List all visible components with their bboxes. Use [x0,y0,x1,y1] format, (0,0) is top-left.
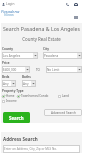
staticText: Land [62,94,69,98]
staticText: Enter an Address, City, Zip or MLS No. [4,147,57,151]
staticText: Pasadena [1,9,20,15]
button[interactable]: Pasadena [43,52,82,59]
button[interactable]: Income [2,99,17,103]
staticText: Beds [2,75,10,79]
staticText: Any [23,82,31,86]
button[interactable]: $400,000 [2,66,30,73]
staticText: City [43,47,50,51]
button[interactable]: Townhomes/Condo [17,94,58,98]
staticText: Income [6,99,17,103]
staticText: Price [2,61,10,65]
staticText: Los Angeles [3,54,33,58]
button[interactable]: Enter an Address, City, Zip or MLS No. [3,145,80,153]
button[interactable]: Login [2,2,15,6]
staticText: Townhomes/Condo [21,94,49,98]
button[interactable]: Email [73,2,78,7]
button[interactable]: Any [2,80,16,87]
button[interactable]: Land [58,94,69,98]
button[interactable]: Los Angeles [2,52,38,59]
staticText: Advanced Search [51,111,76,115]
staticText: Address Search [3,136,38,142]
staticText: Login [6,2,15,6]
staticText: County Real Estate [1,36,82,42]
staticText: No Limit [47,68,77,72]
button[interactable]: Search [3,112,30,123]
staticText: Pasadena [44,54,77,58]
staticText: Property Type [2,89,24,93]
staticText: $400,000 [3,68,25,72]
staticText: TO [30,68,46,72]
staticText: Any [3,82,11,86]
button[interactable]: Call [65,2,70,7]
staticText: Baths [22,75,31,79]
staticText: Home [6,94,15,98]
button[interactable]: Menu [72,13,80,21]
staticText: Views [4,12,14,17]
staticText: Search [9,115,24,121]
staticText: Search Pasadena & Los Angeles [1,25,82,32]
staticText: County [2,47,14,51]
button[interactable]: Any [22,80,36,87]
button[interactable]: No Limit [46,66,82,73]
button[interactable]: Advanced Search [44,109,82,116]
button[interactable]: Home [2,94,17,98]
